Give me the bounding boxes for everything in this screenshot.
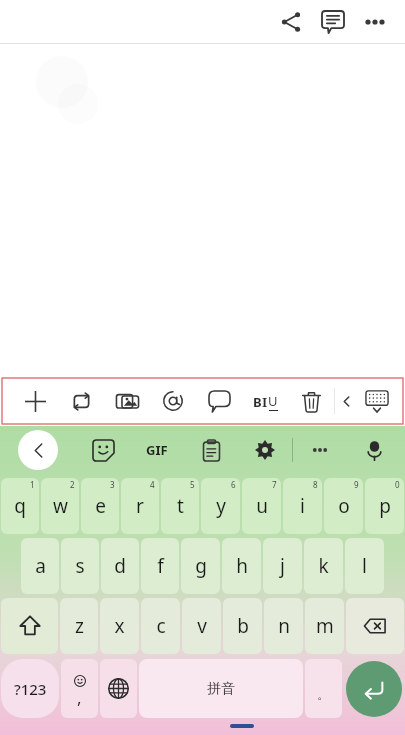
staticText: I bbox=[262, 393, 268, 411]
staticText: i bbox=[300, 493, 305, 519]
button[interactable]: p bbox=[365, 478, 404, 534]
button[interactable]: x bbox=[100, 598, 139, 654]
staticText: 0 bbox=[395, 479, 400, 490]
button[interactable]: i bbox=[283, 478, 322, 534]
staticText: n bbox=[278, 613, 290, 639]
staticText: 7 bbox=[272, 479, 277, 490]
button[interactable]: Change language bbox=[100, 659, 137, 718]
staticText: B bbox=[253, 393, 262, 411]
staticText: j bbox=[280, 553, 285, 579]
button[interactable]: t bbox=[161, 478, 199, 534]
button[interactable]: Comment bbox=[313, 2, 353, 42]
button[interactable]: o bbox=[324, 478, 363, 534]
button[interactable]: Settings bbox=[238, 426, 292, 474]
button[interactable]: e bbox=[81, 478, 119, 534]
staticText: 5 bbox=[190, 479, 195, 490]
button[interactable]: r bbox=[121, 478, 159, 534]
staticText: f bbox=[157, 553, 164, 579]
button[interactable]: Comma, emoji bbox=[61, 659, 98, 718]
button[interactable]: k bbox=[304, 538, 343, 594]
staticText: z bbox=[75, 613, 84, 639]
button[interactable]: Previous bbox=[335, 378, 357, 424]
staticText: t bbox=[177, 493, 184, 519]
staticText: 拼音 bbox=[207, 680, 235, 698]
button[interactable]: n bbox=[264, 598, 303, 654]
staticText: b bbox=[237, 613, 249, 639]
staticText: w bbox=[53, 493, 68, 519]
button[interactable]: Stickers bbox=[76, 426, 130, 474]
staticText: x bbox=[114, 613, 125, 639]
button[interactable]: s bbox=[61, 538, 99, 594]
staticText: e bbox=[95, 493, 106, 519]
staticText: r bbox=[136, 493, 144, 519]
staticText: GIF bbox=[146, 441, 168, 459]
button[interactable]: ?123 bbox=[1, 659, 59, 718]
button[interactable]: f bbox=[141, 538, 179, 594]
button[interactable]: z bbox=[60, 598, 98, 654]
button[interactable]: More bbox=[293, 426, 347, 474]
button[interactable]: Hide keyboard bbox=[357, 378, 397, 424]
staticText: 1 bbox=[30, 479, 35, 490]
button[interactable]: d bbox=[101, 538, 139, 594]
button[interactable]: Share bbox=[271, 2, 311, 42]
button[interactable]: g bbox=[181, 538, 220, 594]
button[interactable]: j bbox=[263, 538, 302, 594]
staticText: p bbox=[379, 493, 391, 519]
staticText: 2 bbox=[70, 479, 75, 490]
button[interactable]: w bbox=[41, 478, 79, 534]
staticText: m bbox=[316, 613, 334, 639]
button[interactable]: More options bbox=[355, 2, 395, 42]
button[interactable]: Insert image bbox=[104, 378, 150, 424]
button[interactable]: Undo redo bbox=[58, 378, 104, 424]
staticText: y bbox=[216, 493, 226, 519]
staticText: k bbox=[318, 553, 329, 579]
button[interactable]: q bbox=[1, 478, 39, 534]
staticText: U bbox=[268, 392, 278, 410]
staticText: , bbox=[77, 686, 82, 709]
button[interactable]: h bbox=[222, 538, 261, 594]
button[interactable]: y bbox=[201, 478, 240, 534]
staticText: l bbox=[362, 553, 367, 579]
button[interactable]: a bbox=[21, 538, 59, 594]
button[interactable]: 拼音 bbox=[139, 659, 303, 718]
button[interactable]: l bbox=[345, 538, 384, 594]
button[interactable]: Backspace bbox=[346, 598, 404, 654]
button[interactable]: m bbox=[305, 598, 344, 654]
staticText: 4 bbox=[150, 479, 155, 490]
button[interactable]: u bbox=[242, 478, 281, 534]
staticText: d bbox=[114, 553, 126, 579]
staticText: ?123 bbox=[14, 679, 47, 699]
button[interactable]: Delete bbox=[288, 378, 334, 424]
button[interactable]: c bbox=[141, 598, 180, 654]
button[interactable]: Comment bbox=[196, 378, 242, 424]
staticText: s bbox=[75, 553, 85, 579]
staticText: v bbox=[197, 613, 207, 639]
button[interactable]: b bbox=[223, 598, 262, 654]
staticText: 。 bbox=[317, 686, 330, 702]
button[interactable]: Clipboard bbox=[184, 426, 238, 474]
staticText: g bbox=[195, 553, 207, 579]
button[interactable]: 。 bbox=[305, 659, 342, 718]
staticText: q bbox=[14, 493, 26, 519]
button[interactable]: Text format bbox=[242, 378, 288, 424]
staticText: 3 bbox=[110, 479, 115, 490]
staticText: h bbox=[236, 553, 248, 579]
button[interactable]: v bbox=[182, 598, 221, 654]
staticText: c bbox=[156, 613, 166, 639]
staticText: 9 bbox=[354, 479, 359, 490]
button[interactable]: Shift bbox=[1, 598, 58, 654]
button[interactable]: Enter bbox=[346, 661, 402, 717]
button[interactable]: Mention bbox=[150, 378, 196, 424]
button[interactable]: Voice input bbox=[347, 426, 401, 474]
button[interactable]: Back bbox=[18, 430, 58, 470]
staticText: a bbox=[35, 553, 46, 579]
staticText: 6 bbox=[231, 479, 236, 490]
button[interactable]: GIF bbox=[130, 426, 184, 474]
staticText: u bbox=[256, 493, 268, 519]
staticText: o bbox=[338, 493, 350, 519]
button[interactable]: Add bbox=[12, 378, 58, 424]
staticText: 8 bbox=[313, 479, 318, 490]
